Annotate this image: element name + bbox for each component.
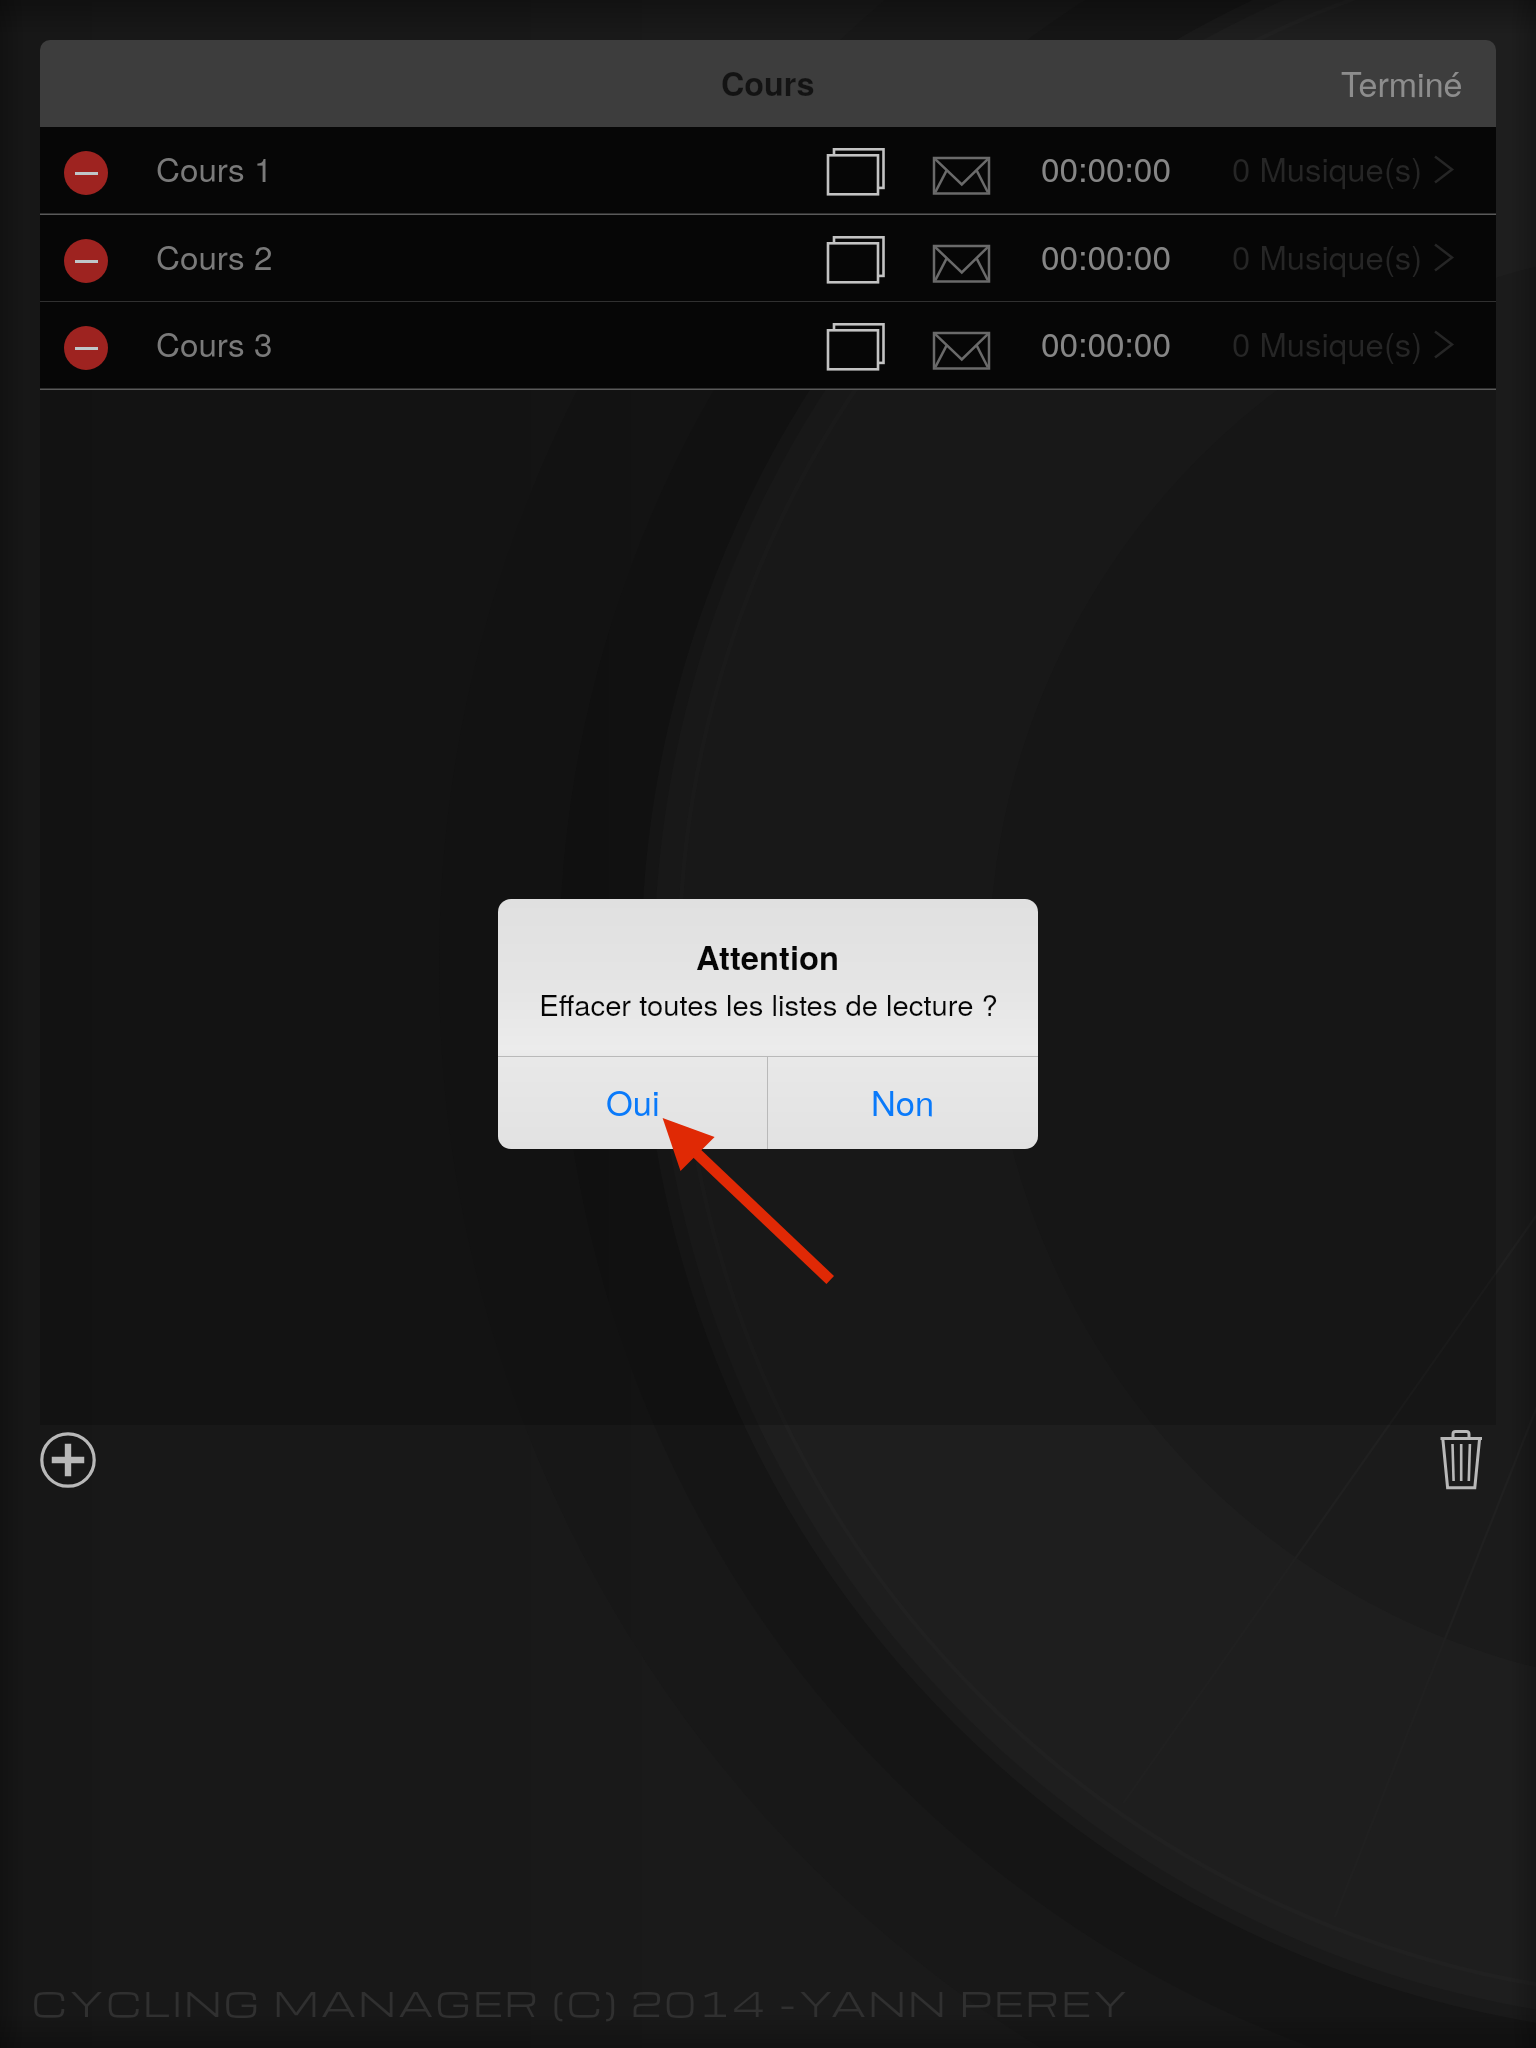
button[interactable]: Remove course xyxy=(40,127,1496,215)
button[interactable]: Playlist, 0 songs xyxy=(1220,127,1496,215)
staticText: 00:00:00 xyxy=(1041,144,1171,192)
button[interactable]: Remove course xyxy=(40,215,1496,303)
staticText: 0 Musique(s) xyxy=(1232,232,1423,279)
button[interactable]: Duplicate course xyxy=(784,310,848,374)
button[interactable]: Add course xyxy=(40,1432,96,1488)
button[interactable]: Remove course xyxy=(64,151,108,195)
staticText: 0 Musique(s) xyxy=(1232,144,1423,191)
staticText: Terminé xyxy=(1341,58,1463,107)
button[interactable]: Playlist, 0 songs xyxy=(1220,302,1496,390)
button[interactable]: Non xyxy=(768,1057,1038,1149)
button[interactable]: Delete all playlists xyxy=(1436,1428,1492,1492)
staticText: 0 Musique(s) xyxy=(1232,319,1423,366)
staticText: Oui xyxy=(606,1077,660,1126)
staticText: 00:00:00 xyxy=(1041,232,1171,280)
button[interactable]: Remove course xyxy=(64,239,108,283)
button[interactable]: Send course by mail xyxy=(888,310,952,374)
staticText: CYCLING MANAGER (C) 2014 -YANN PEREY xyxy=(32,1979,1131,2026)
button[interactable]: Send course by mail xyxy=(888,135,952,199)
button[interactable]: Remove course xyxy=(64,326,108,370)
button[interactable]: Duplicate course xyxy=(784,135,848,199)
staticText: Cours 1 xyxy=(156,144,273,192)
staticText: Non xyxy=(871,1077,935,1126)
staticText: Cours xyxy=(721,60,815,106)
staticText: Cours 2 xyxy=(156,232,273,280)
staticText: Cours 3 xyxy=(156,319,273,367)
staticText: Attention xyxy=(696,933,840,980)
button[interactable]: Duplicate course xyxy=(784,223,848,287)
button[interactable]: Playlist, 0 songs xyxy=(1220,215,1496,303)
button[interactable]: Remove course xyxy=(40,302,1496,390)
button[interactable]: Send course by mail xyxy=(888,223,952,287)
staticText: Effacer toutes les listes de lecture ? xyxy=(539,982,998,1024)
staticText: 00:00:00 xyxy=(1041,319,1171,367)
button[interactable]: Oui xyxy=(498,1057,767,1149)
button[interactable]: Terminé xyxy=(1325,46,1496,119)
